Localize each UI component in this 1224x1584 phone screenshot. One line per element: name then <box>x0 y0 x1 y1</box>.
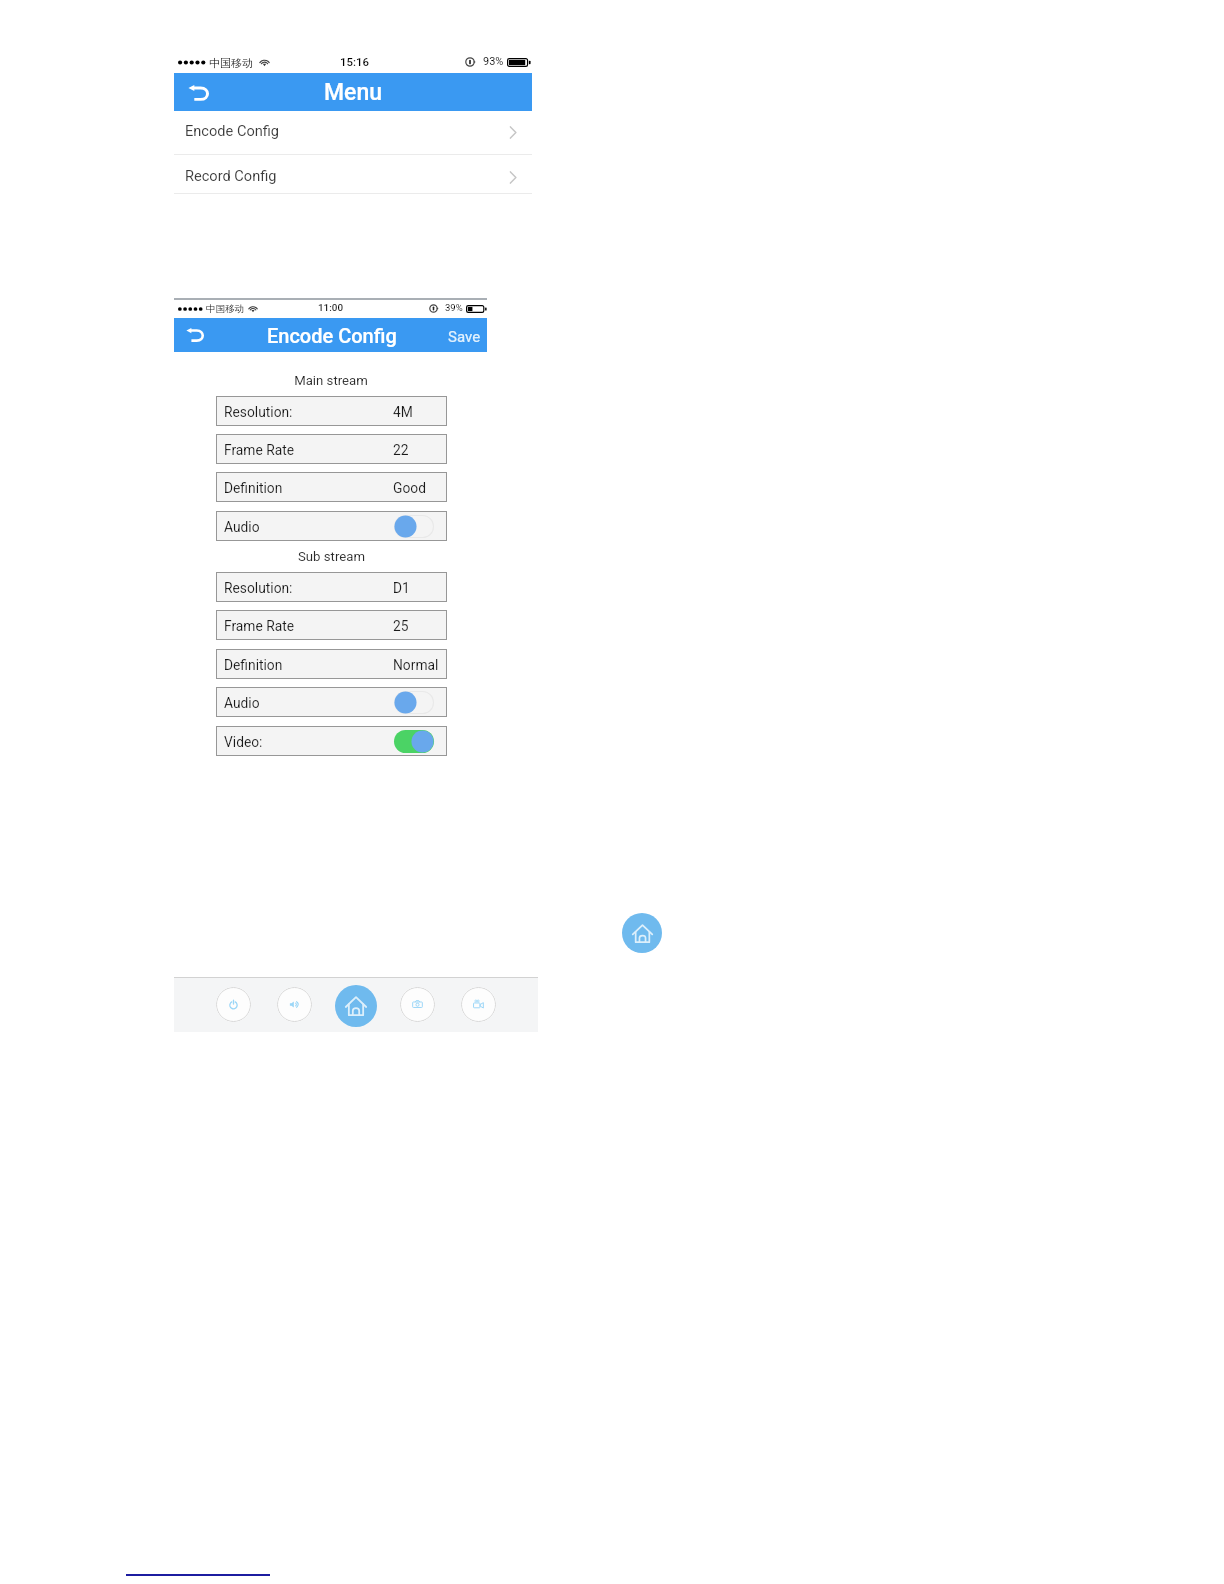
staticText: Frame Rate <box>224 618 295 634</box>
button[interactable]: Toggle <box>394 515 434 538</box>
staticText: D1 <box>393 580 410 596</box>
button[interactable]: Video: <box>216 726 447 756</box>
staticText: 11:00 <box>318 302 344 314</box>
button[interactable]: Audio <box>216 511 447 541</box>
button[interactable]: Toggle <box>394 691 434 714</box>
staticText: Sub stream <box>298 549 365 564</box>
staticText: Audio <box>224 519 260 535</box>
button[interactable]: Back <box>174 318 212 352</box>
button[interactable]: Save <box>448 328 481 346</box>
button[interactable]: Back <box>174 73 218 111</box>
button[interactable]: Resolution: <box>216 396 447 426</box>
staticText: Main stream <box>294 373 368 388</box>
staticText: Normal <box>393 657 439 673</box>
staticText: Good <box>393 480 426 496</box>
staticText: 25 <box>393 618 409 634</box>
staticText: 15:16 <box>340 55 370 68</box>
staticText: Definition <box>224 480 283 496</box>
staticText: 中国移动 <box>209 56 253 70</box>
staticText: Save <box>448 328 481 346</box>
button[interactable]: Audio <box>277 987 312 1022</box>
staticText: 中国移动 <box>206 303 244 315</box>
button[interactable]: Record Config <box>174 154 532 194</box>
staticText: Frame Rate <box>224 442 295 458</box>
button[interactable]: Audio <box>216 687 447 717</box>
button[interactable]: Snapshot <box>400 987 435 1022</box>
staticText: Video: <box>224 734 263 750</box>
button[interactable]: Toggle <box>394 730 434 753</box>
staticText: Record Config <box>185 167 277 184</box>
staticText: Resolution: <box>224 404 293 420</box>
staticText: 22 <box>393 442 409 458</box>
staticText: 39% <box>445 302 463 313</box>
button[interactable]: Home <box>622 913 662 953</box>
staticText: Resolution: <box>224 580 293 596</box>
button[interactable]: Power <box>216 987 251 1022</box>
button[interactable]: Definition <box>216 649 447 679</box>
button[interactable]: Definition <box>216 472 447 502</box>
button[interactable]: Record <box>461 987 496 1022</box>
button[interactable]: Encode Config <box>174 111 532 155</box>
button[interactable]: Frame Rate <box>216 434 447 464</box>
staticText: Encode Config <box>267 324 397 347</box>
staticText: Encode Config <box>185 122 280 139</box>
button[interactable]: Home <box>335 985 377 1027</box>
staticText: Menu <box>324 79 383 106</box>
staticText: Audio <box>224 695 260 711</box>
staticText: Definition <box>224 657 283 673</box>
staticText: 93% <box>483 55 504 68</box>
staticText: 4M <box>393 404 413 420</box>
button[interactable]: Frame Rate <box>216 610 447 640</box>
button[interactable]: Resolution: <box>216 572 447 602</box>
